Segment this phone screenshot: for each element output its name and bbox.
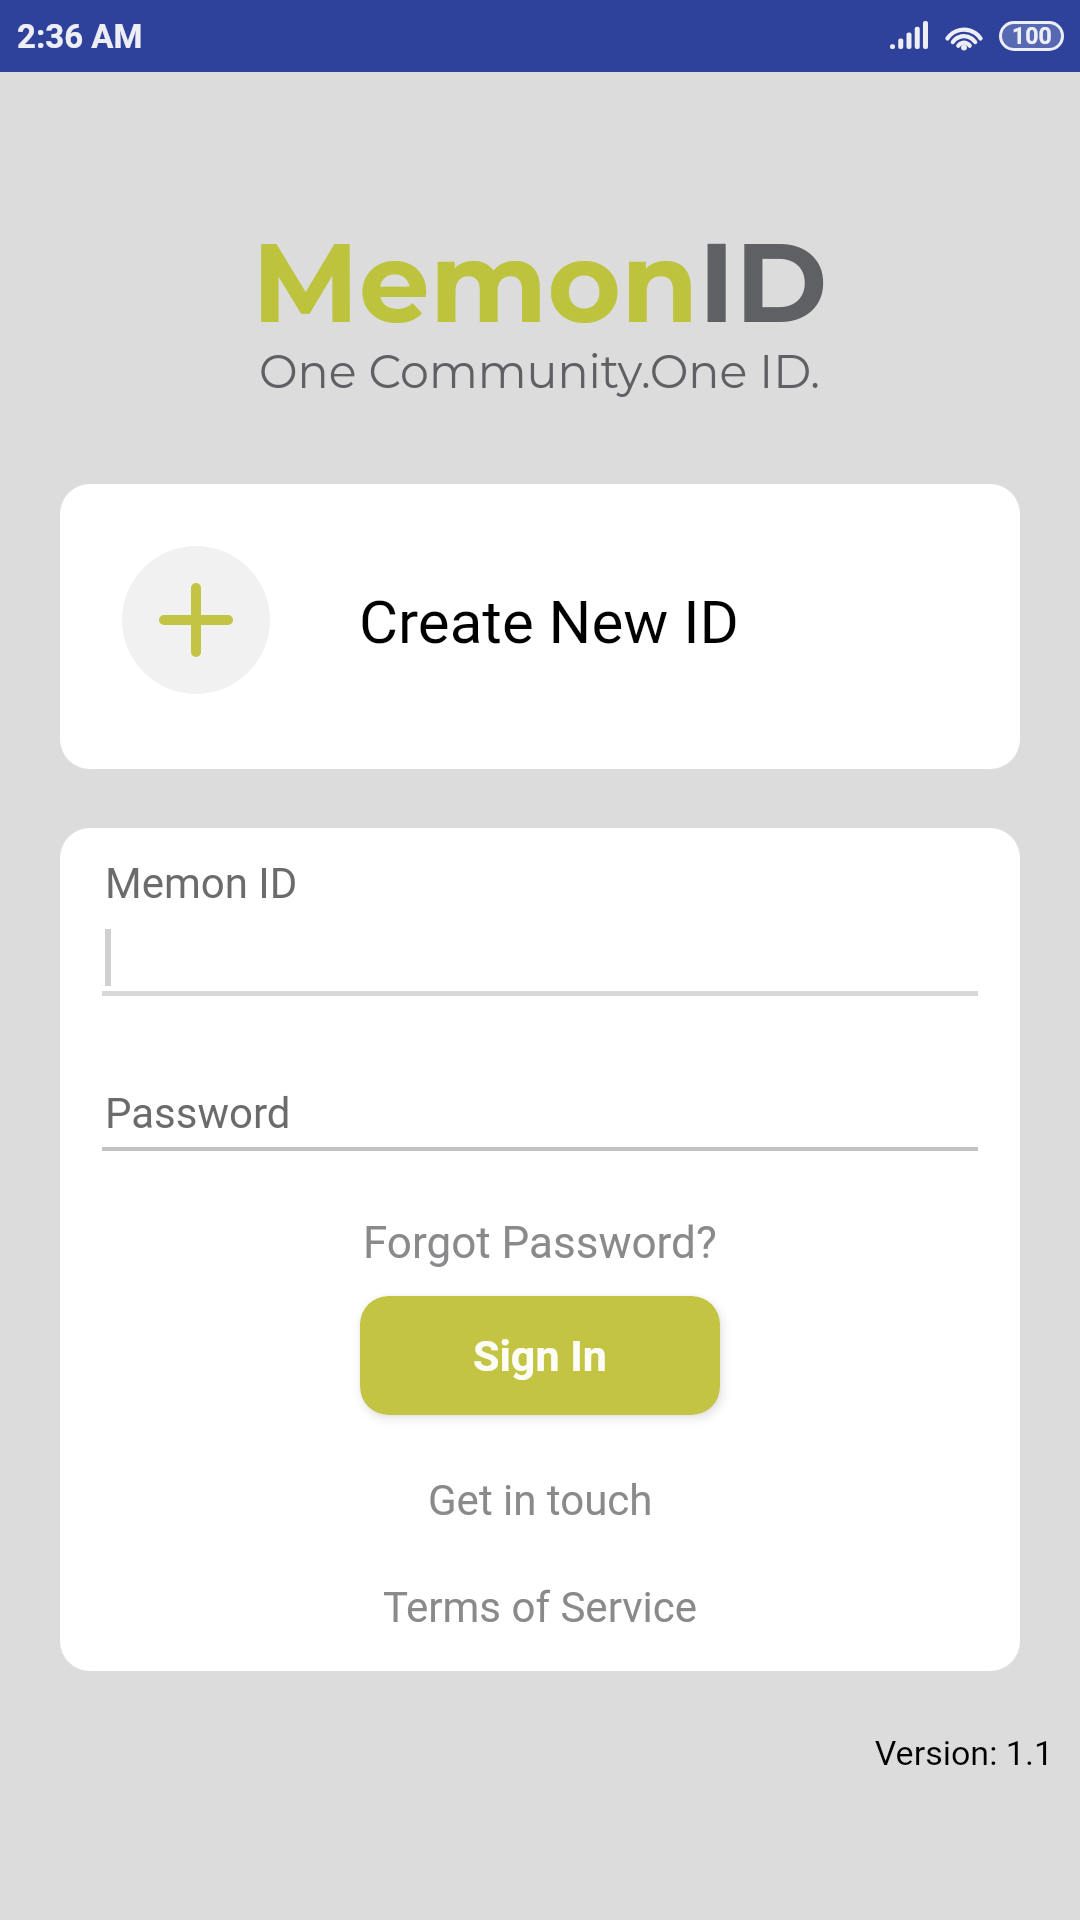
button[interactable]: Terms of Service bbox=[371, 1575, 710, 1640]
staticText: Password bbox=[105, 1089, 291, 1138]
staticText: Version: 1.1 bbox=[0, 1733, 1053, 1773]
staticText: MemonID bbox=[252, 214, 828, 351]
other: Create New ID bbox=[122, 546, 270, 694]
staticText: Sign In bbox=[473, 1331, 607, 1381]
staticText: 100 bbox=[1012, 24, 1052, 47]
button[interactable]: Get in touch bbox=[416, 1468, 665, 1533]
staticText: Memon ID bbox=[105, 859, 298, 908]
button[interactable]: Forgot Password? bbox=[351, 1209, 729, 1277]
staticText: 2:36 AM bbox=[17, 17, 143, 56]
staticText: One Community.One ID. bbox=[259, 343, 821, 399]
button[interactable]: Sign In bbox=[360, 1296, 720, 1415]
staticText: Create New ID bbox=[359, 587, 739, 657]
button[interactable]: Create New ID bbox=[60, 484, 1020, 769]
